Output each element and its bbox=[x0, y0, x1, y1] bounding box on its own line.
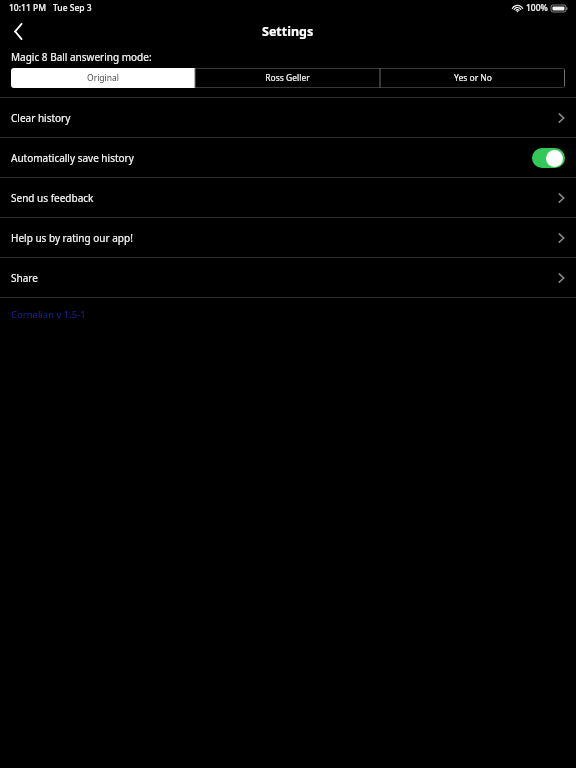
staticText: Original bbox=[87, 72, 119, 84]
staticText: Share bbox=[11, 271, 558, 285]
button[interactable]: Clear history bbox=[0, 98, 576, 137]
button[interactable]: Send us feedback bbox=[0, 178, 576, 217]
staticText: Tue Sep 3 bbox=[53, 2, 92, 14]
staticText: 100% bbox=[526, 2, 548, 14]
button[interactable]: Cornelian v 1.5-1 bbox=[11, 308, 86, 321]
button[interactable]: Back bbox=[0, 16, 36, 46]
staticText: Settings bbox=[262, 23, 314, 40]
staticText: Ross Geller bbox=[265, 72, 310, 84]
button[interactable]: Automatically save history toggle bbox=[532, 148, 565, 168]
staticText: Magic 8 Ball answering mode: bbox=[11, 50, 152, 64]
staticText: 10:11 PM bbox=[9, 2, 46, 14]
staticText: Help us by rating our app! bbox=[11, 231, 558, 245]
staticText: Send us feedback bbox=[11, 191, 558, 205]
button[interactable]: Ross Geller bbox=[195, 68, 380, 88]
staticText: Yes or No bbox=[454, 72, 492, 84]
button[interactable]: Yes or No bbox=[380, 68, 565, 88]
staticText: Automatically save history bbox=[11, 151, 532, 165]
button[interactable]: Share bbox=[0, 258, 576, 297]
button[interactable]: Original bbox=[11, 68, 195, 88]
staticText: Clear history bbox=[11, 111, 558, 125]
button[interactable]: Help us by rating our app! bbox=[0, 218, 576, 257]
